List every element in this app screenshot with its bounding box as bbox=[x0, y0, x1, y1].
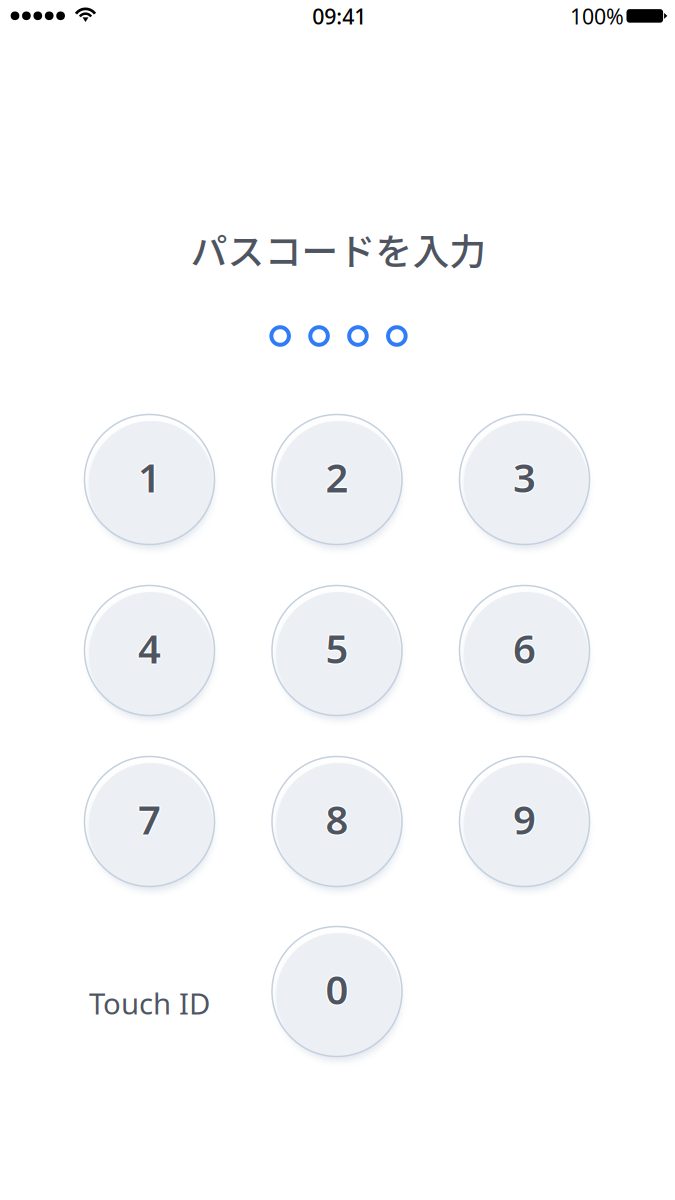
staticText: 8 bbox=[325, 790, 348, 845]
staticText: 4 bbox=[139, 621, 162, 675]
staticText: 9 bbox=[513, 793, 536, 848]
staticText: 3 bbox=[512, 450, 535, 504]
staticText: 9 bbox=[513, 790, 536, 845]
staticText: 7 bbox=[138, 792, 161, 846]
staticText: 6 bbox=[512, 621, 535, 675]
staticText: 6 bbox=[513, 621, 536, 675]
staticText: 7 bbox=[139, 792, 162, 846]
staticText: 1 bbox=[138, 451, 161, 506]
staticText: 5 bbox=[325, 622, 348, 677]
staticText: 5 bbox=[327, 621, 350, 675]
button[interactable]: 7 bbox=[84, 756, 215, 887]
staticText: 5 bbox=[324, 621, 347, 675]
staticText: 5 bbox=[325, 619, 348, 674]
staticText: 1 bbox=[138, 450, 161, 504]
staticText: 3 bbox=[513, 451, 536, 506]
staticText: 9 bbox=[514, 792, 537, 846]
staticText: 8 bbox=[327, 792, 350, 846]
staticText: 2 bbox=[325, 448, 348, 503]
staticText: 7 bbox=[137, 792, 160, 846]
staticText: 1 bbox=[139, 450, 162, 504]
staticText: 0 bbox=[327, 962, 350, 1016]
staticText: 5 bbox=[325, 621, 348, 675]
staticText: 09:41 bbox=[312, 2, 366, 31]
button[interactable]: 8 bbox=[271, 756, 403, 887]
staticText: 2 bbox=[325, 451, 348, 506]
staticText: 0 bbox=[325, 962, 348, 1016]
staticText: パスコードを入力 bbox=[190, 222, 486, 276]
staticText: 6 bbox=[513, 622, 536, 677]
staticText: 8 bbox=[324, 792, 347, 846]
staticText: 1 bbox=[138, 448, 161, 503]
staticText: 0 bbox=[324, 962, 347, 1016]
staticText: 1 bbox=[137, 450, 160, 504]
button[interactable]: 6 bbox=[459, 585, 590, 716]
button[interactable]: 4 bbox=[84, 585, 215, 716]
staticText: 4 bbox=[137, 621, 160, 675]
button[interactable]: 5 bbox=[271, 585, 403, 716]
staticText: 7 bbox=[138, 790, 161, 845]
staticText: 6 bbox=[514, 621, 537, 675]
staticText: 2 bbox=[324, 450, 347, 504]
staticText: 3 bbox=[514, 450, 537, 504]
staticText: 7 bbox=[138, 793, 161, 848]
button[interactable]: 2 bbox=[271, 414, 403, 545]
button[interactable]: Touch ID bbox=[84, 937, 215, 1069]
staticText: 0 bbox=[325, 960, 348, 1015]
staticText: 4 bbox=[138, 621, 161, 675]
button[interactable]: 9 bbox=[459, 756, 590, 887]
staticText: 100% bbox=[570, 2, 624, 31]
staticText: Touch ID bbox=[89, 983, 210, 1023]
staticText: 8 bbox=[325, 793, 348, 848]
staticText: 4 bbox=[138, 622, 161, 677]
staticText: 6 bbox=[513, 619, 536, 674]
staticText: 2 bbox=[325, 450, 348, 504]
staticText: 4 bbox=[138, 619, 161, 674]
button[interactable]: 1 bbox=[84, 414, 215, 545]
button[interactable]: 0 bbox=[271, 926, 403, 1057]
staticText: 3 bbox=[513, 450, 536, 504]
staticText: 9 bbox=[512, 792, 535, 846]
staticText: 2 bbox=[327, 450, 350, 504]
staticText: 9 bbox=[513, 792, 536, 846]
button[interactable]: 3 bbox=[459, 414, 590, 545]
staticText: 3 bbox=[513, 448, 536, 503]
staticText: 0 bbox=[325, 963, 348, 1018]
staticText: 8 bbox=[325, 792, 348, 846]
